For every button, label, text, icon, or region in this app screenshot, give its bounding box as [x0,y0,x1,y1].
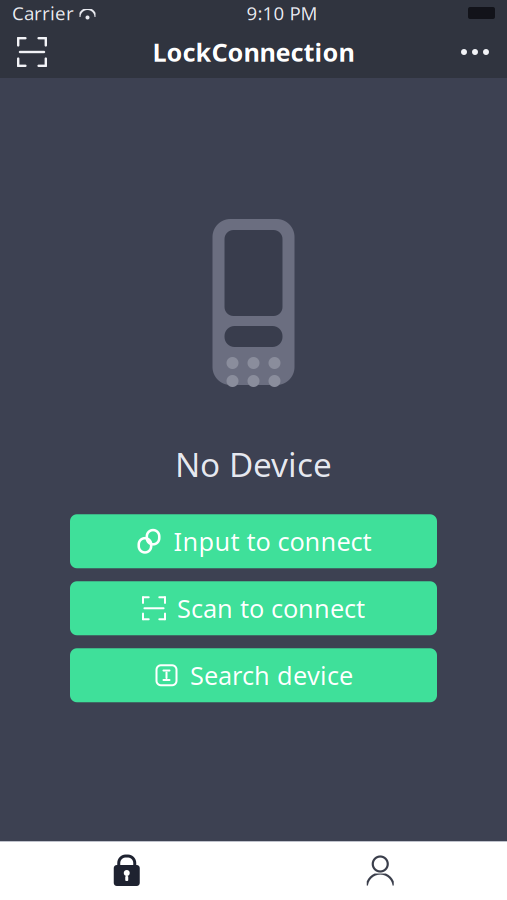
button[interactable]: Scan to connect [70,581,437,635]
staticText: Carrier [12,1,74,25]
button[interactable]: More options [453,30,497,74]
button[interactable]: Scan QR code [10,30,54,74]
staticText: 9:10 PM [246,1,317,25]
staticText: LockConnection [152,35,354,69]
button[interactable]: Search device [70,648,437,702]
staticText: Search device [190,658,353,692]
button[interactable]: Account [253,842,507,900]
staticText: Scan to connect [177,591,365,625]
staticText: No Device [175,442,332,486]
button[interactable]: Locks [0,842,253,900]
button[interactable]: Input to connect [70,514,437,568]
staticText: Input to connect [173,524,371,558]
